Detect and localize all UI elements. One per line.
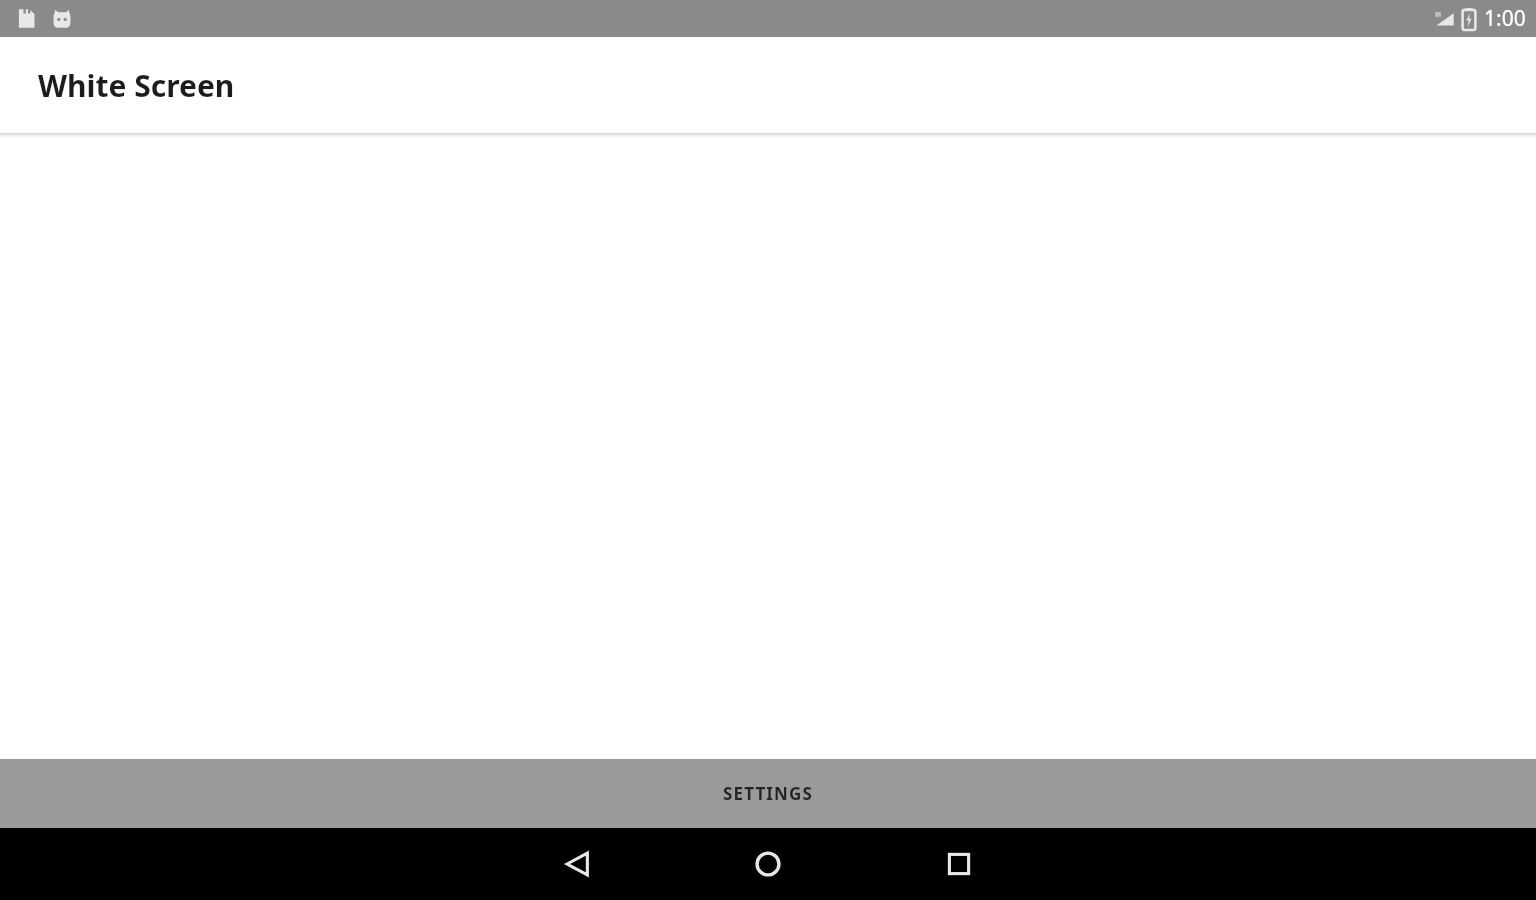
- staticText: White Screen: [38, 65, 235, 106]
- button[interactable]: Back: [548, 834, 608, 894]
- button[interactable]: SETTINGS: [0, 759, 1536, 828]
- button[interactable]: Home: [738, 834, 798, 894]
- staticText: 1:00: [1484, 4, 1526, 33]
- button[interactable]: Recent apps: [929, 834, 989, 894]
- staticText: SETTINGS: [723, 782, 813, 805]
